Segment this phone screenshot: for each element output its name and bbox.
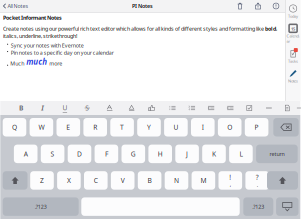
staticText: .?123 bbox=[252, 203, 264, 210]
button[interactable]: K bbox=[202, 145, 226, 163]
staticText: Y bbox=[147, 123, 151, 132]
staticText: E bbox=[66, 123, 70, 132]
staticText: U bbox=[62, 103, 67, 112]
button[interactable]: P bbox=[245, 118, 268, 136]
button[interactable]: Shift bbox=[267, 171, 298, 190]
button[interactable]: L bbox=[229, 145, 253, 163]
staticText: K bbox=[212, 149, 216, 158]
button[interactable]: Bold bbox=[14, 101, 28, 115]
button[interactable]: X bbox=[57, 171, 81, 190]
button[interactable]: More bbox=[292, 101, 301, 115]
button[interactable]: C bbox=[84, 171, 108, 190]
staticText: C bbox=[94, 176, 98, 185]
staticText: Today bbox=[288, 13, 298, 19]
button[interactable]: All Notes bbox=[0, 1, 28, 11]
button[interactable]: E bbox=[56, 118, 80, 136]
button[interactable]: Underline bbox=[58, 101, 72, 115]
staticText: G bbox=[131, 149, 136, 158]
button[interactable] bbox=[81, 197, 240, 216]
staticText: B bbox=[148, 176, 152, 185]
button[interactable]: Z bbox=[30, 171, 54, 190]
button[interactable]: return bbox=[256, 145, 298, 163]
button[interactable]: Checklist bbox=[242, 101, 256, 115]
button[interactable]: .?123 bbox=[3, 197, 79, 216]
button[interactable]: Bulleted list bbox=[165, 101, 179, 115]
staticText: Tasks bbox=[288, 58, 298, 64]
button[interactable]: Indent bbox=[204, 101, 218, 115]
staticText: X bbox=[67, 176, 71, 185]
button[interactable]: Today bbox=[286, 4, 300, 19]
staticText: T bbox=[120, 123, 124, 132]
button[interactable]: Q bbox=[3, 118, 26, 136]
button[interactable]: A bbox=[14, 145, 37, 163]
button[interactable]: V bbox=[111, 171, 134, 190]
staticText: A bbox=[24, 149, 28, 158]
staticText: N bbox=[174, 176, 179, 185]
staticText: Much bbox=[10, 60, 24, 67]
staticText: Pin notes to a specific day on your cale… bbox=[11, 49, 114, 56]
button[interactable]: U bbox=[164, 118, 188, 136]
button[interactable]: 15 bbox=[286, 24, 300, 44]
button[interactable]: O bbox=[218, 118, 241, 136]
button[interactable]: G bbox=[121, 145, 145, 163]
staticText: more bbox=[49, 60, 62, 67]
button[interactable]: ? bbox=[245, 171, 269, 190]
button[interactable]: B bbox=[138, 171, 161, 190]
button[interactable]: R bbox=[83, 118, 107, 136]
button[interactable]: Tasks bbox=[286, 49, 300, 64]
staticText: 15 bbox=[291, 26, 295, 32]
button[interactable]: Attachment bbox=[280, 101, 294, 115]
button[interactable]: ! bbox=[218, 171, 242, 190]
button[interactable]: T bbox=[110, 118, 134, 136]
staticText: I bbox=[202, 123, 204, 132]
staticText: J bbox=[186, 149, 188, 158]
staticText: return bbox=[269, 150, 284, 157]
staticText: P bbox=[255, 123, 259, 132]
staticText: O bbox=[227, 123, 232, 132]
staticText: PI Notes bbox=[132, 2, 153, 10]
button[interactable]: Y bbox=[137, 118, 161, 136]
button[interactable]: D bbox=[68, 145, 91, 163]
staticText: ! bbox=[229, 173, 231, 182]
staticText: B bbox=[19, 104, 23, 112]
staticText: Sync your notes with Evernote bbox=[11, 42, 84, 49]
button[interactable]: M bbox=[192, 171, 215, 190]
staticText: .?123 bbox=[35, 203, 47, 210]
button[interactable]: F bbox=[95, 145, 118, 163]
staticText: L bbox=[239, 149, 242, 158]
button[interactable]: I bbox=[191, 118, 215, 136]
staticText: Notes bbox=[288, 78, 298, 83]
button[interactable]: Outdent bbox=[223, 101, 237, 115]
button[interactable]: Hide keyboard bbox=[276, 197, 298, 216]
button[interactable]: .?123 bbox=[243, 197, 273, 216]
staticText: Calendar bbox=[287, 33, 300, 44]
button[interactable]: Text colour bbox=[103, 101, 117, 115]
button[interactable]: Info bbox=[272, 1, 280, 11]
button[interactable]: H bbox=[148, 145, 172, 163]
staticText: . bbox=[257, 181, 258, 188]
button[interactable]: Delete bbox=[236, 1, 244, 11]
button[interactable]: N bbox=[165, 171, 188, 190]
staticText: much bbox=[26, 56, 47, 67]
button[interactable]: Insert object bbox=[145, 101, 159, 115]
staticText: S bbox=[85, 104, 89, 112]
button[interactable]: Divider bbox=[262, 101, 276, 115]
button[interactable]: J bbox=[175, 145, 199, 163]
button[interactable]: Italic bbox=[36, 101, 50, 115]
staticText: S bbox=[51, 149, 55, 158]
staticText: Z bbox=[40, 176, 44, 185]
button[interactable]: Shift bbox=[3, 171, 27, 190]
staticText: R bbox=[93, 123, 97, 132]
button[interactable]: S bbox=[41, 145, 64, 163]
button[interactable]: Notes bbox=[286, 69, 300, 84]
staticText: H bbox=[158, 149, 163, 158]
button[interactable]: W bbox=[30, 118, 53, 136]
button[interactable]: Delete bbox=[273, 118, 299, 136]
staticText: Create notes using our powerful rich tex… bbox=[3, 25, 277, 39]
button[interactable]: Share bbox=[254, 1, 262, 11]
button[interactable]: Numbered list bbox=[185, 101, 199, 115]
button[interactable]: Highlight bbox=[125, 101, 139, 115]
staticText: ? bbox=[256, 173, 259, 182]
button[interactable]: Strikethrough bbox=[80, 101, 94, 115]
